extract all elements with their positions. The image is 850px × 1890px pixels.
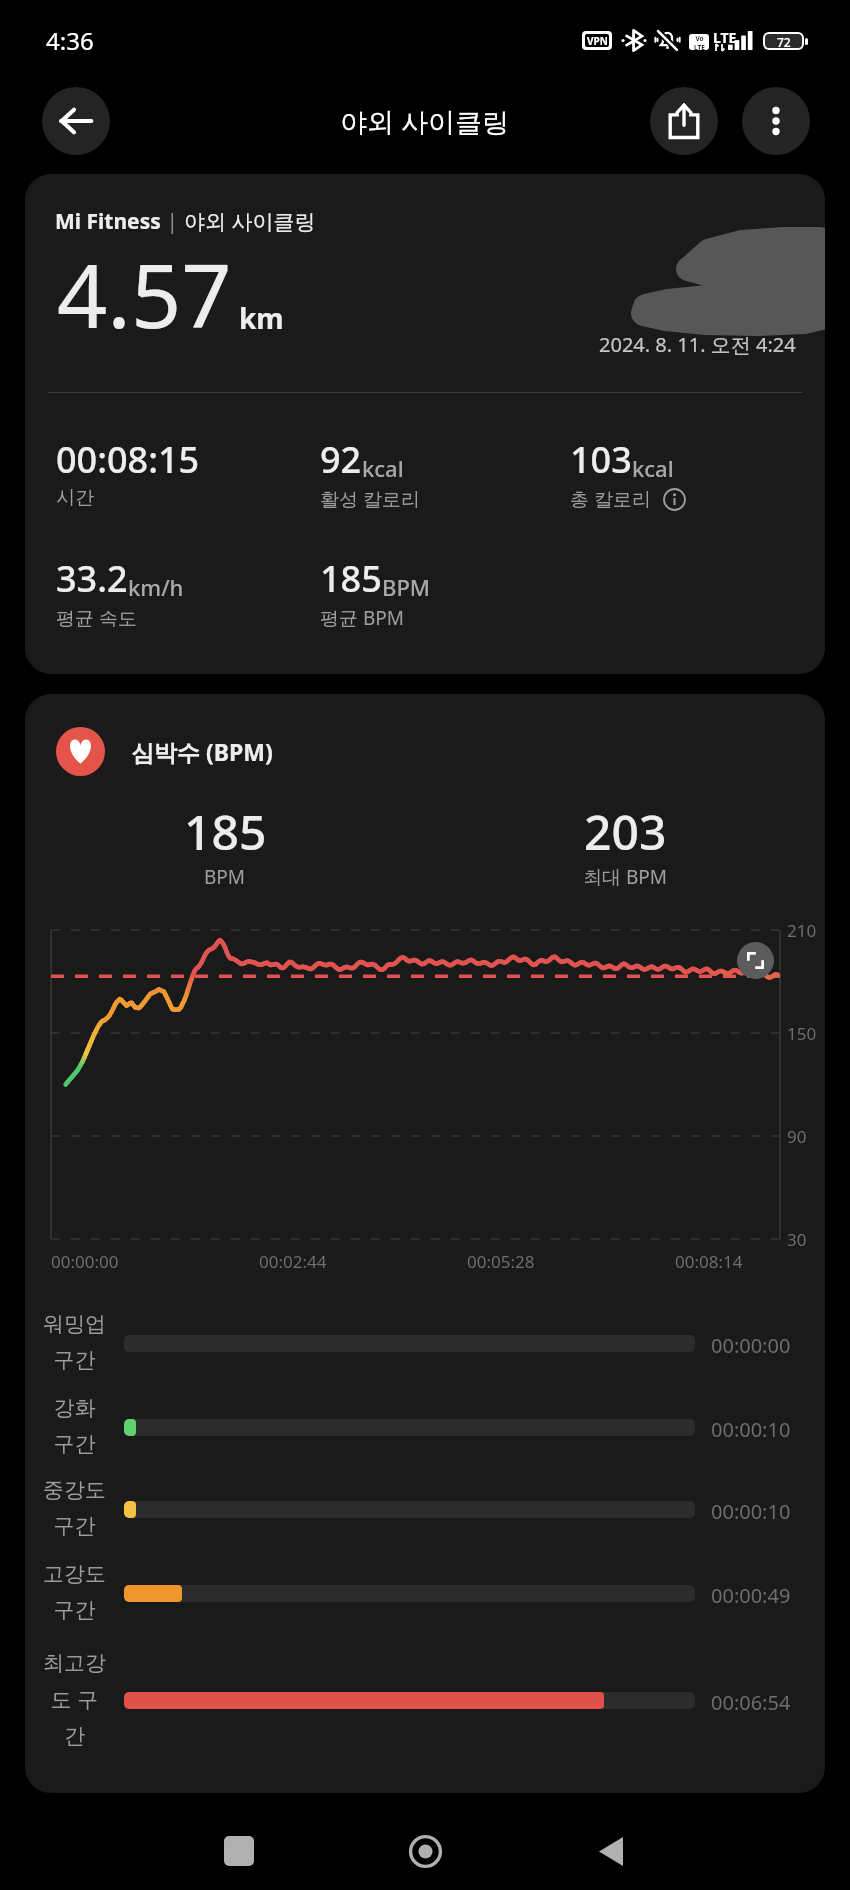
staticText: 4.57	[57, 234, 232, 354]
staticText: 103	[570, 435, 632, 484]
staticText: 185	[320, 554, 382, 603]
staticText: 00:08:14	[675, 1250, 743, 1273]
staticText: 중강도 구간	[25, 1477, 126, 1539]
staticText: 00:00:10	[711, 1416, 791, 1443]
button[interactable]: Home	[390, 1816, 460, 1886]
staticText: kcal	[362, 453, 404, 483]
staticText: 72	[777, 34, 791, 48]
staticText: kcal	[632, 453, 674, 483]
staticText: |	[161, 207, 184, 236]
staticText: 고강도 구간	[25, 1561, 126, 1623]
staticText: 최대 BPM	[583, 864, 668, 890]
staticText: 총 칼로리	[570, 486, 651, 512]
staticText: 평균 BPM	[320, 605, 405, 631]
staticText: Vo	[695, 34, 704, 43]
staticText: 워밍업 구간	[25, 1311, 126, 1373]
staticText: 30	[787, 1228, 807, 1251]
button[interactable]: Share	[650, 87, 718, 155]
button[interactable]: Mi Fitness	[25, 174, 825, 674]
button[interactable]: Recents	[204, 1816, 274, 1886]
button[interactable]: Back	[42, 87, 110, 155]
staticText: 2024. 8. 11. 오전 4:24	[599, 331, 796, 358]
staticText: 92	[320, 435, 362, 484]
button[interactable]: Back	[576, 1816, 646, 1886]
staticText: Mi Fitness	[55, 207, 161, 236]
staticText: 야외 사이클링	[184, 207, 316, 236]
staticText: 90	[787, 1125, 807, 1148]
staticText: 00:00:00	[51, 1250, 119, 1273]
button[interactable]: Expand chart	[737, 942, 774, 979]
staticText: 평균 속도	[56, 605, 137, 631]
staticText: 00:00:10	[711, 1498, 791, 1525]
staticText: km/h	[128, 572, 184, 602]
staticText: LTE	[694, 43, 705, 50]
staticText: km	[239, 299, 284, 337]
staticText: 강화 구간	[25, 1395, 126, 1457]
staticText: 185	[184, 799, 267, 864]
staticText: 00:06:54	[711, 1689, 791, 1716]
staticText: 150	[787, 1022, 817, 1045]
staticText: 시간	[56, 486, 94, 510]
staticText: 00:02:44	[259, 1250, 327, 1273]
staticText: 203	[584, 799, 667, 864]
button[interactable]: More options	[742, 87, 810, 155]
staticText: 심박수 (BPM)	[131, 736, 273, 767]
staticText: 4:36	[46, 24, 94, 57]
staticText: 00:00:49	[711, 1582, 791, 1609]
staticText: 33.2	[56, 554, 128, 603]
staticText: 야외 사이클링	[340, 103, 510, 140]
staticText: VPN	[587, 34, 608, 47]
staticText: BPM	[204, 864, 246, 890]
staticText: 최고강 도 구 간	[25, 1650, 126, 1749]
staticText: 00:00:00	[711, 1332, 791, 1359]
staticText: 210	[787, 919, 817, 942]
staticText: LTE	[713, 28, 737, 47]
staticText: 00:08:15	[56, 435, 200, 484]
staticText: 00:05:28	[467, 1250, 535, 1273]
staticText: BPM	[382, 572, 431, 602]
staticText: 활성 칼로리	[320, 486, 420, 512]
